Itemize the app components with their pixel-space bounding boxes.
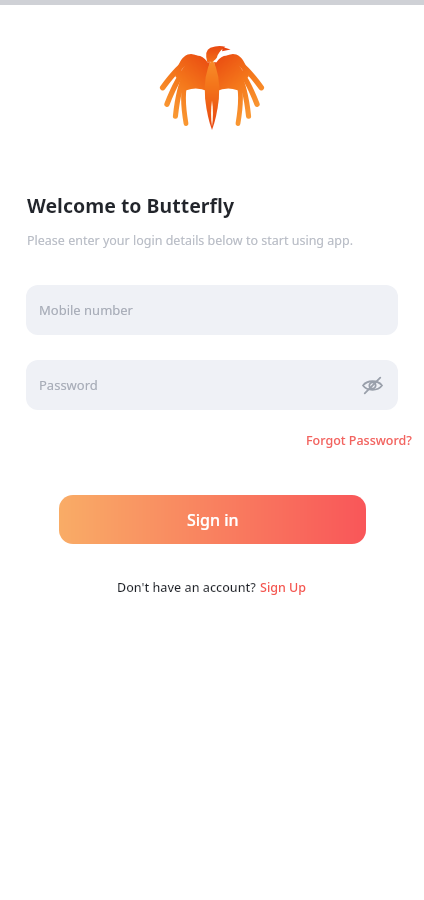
- staticText: Mobile number: [39, 301, 133, 319]
- other: Butterfly phoenix logo: [159, 38, 265, 130]
- button[interactable]: Password: [26, 360, 398, 410]
- staticText: Don't have an account?: [117, 579, 260, 596]
- staticText: Sign Up: [260, 579, 307, 596]
- staticText: Welcome to Butterfly: [27, 192, 235, 219]
- staticText: Password: [39, 376, 98, 394]
- button[interactable]: Mobile number: [26, 285, 398, 335]
- staticText: Sign in: [187, 509, 239, 531]
- button[interactable]: Sign Up: [260, 579, 307, 596]
- staticText: Please enter your login details below to…: [27, 232, 354, 249]
- button[interactable]: Forgot Password?: [302, 429, 416, 452]
- button[interactable]: Sign in: [59, 495, 366, 544]
- staticText: Forgot Password?: [306, 432, 412, 449]
- button[interactable]: Toggle password visibility: [358, 371, 386, 399]
